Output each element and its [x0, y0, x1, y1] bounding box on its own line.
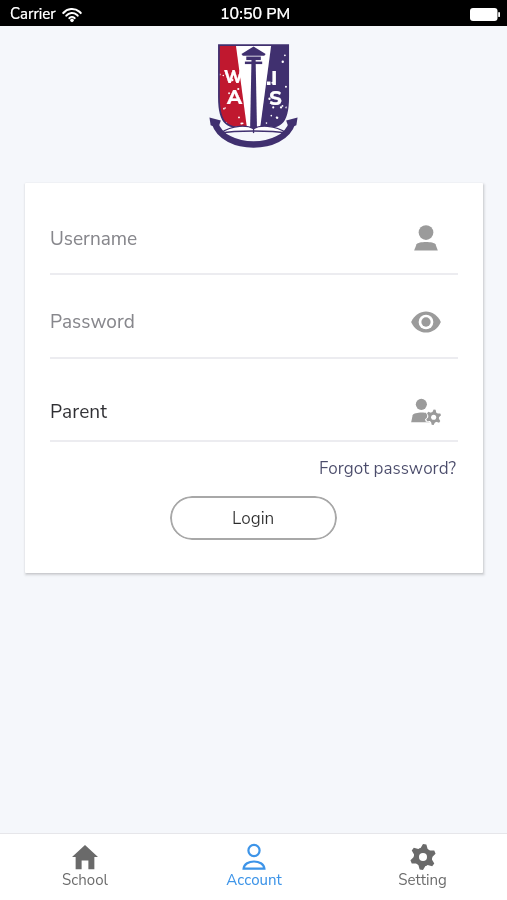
staticText: W.	[224, 66, 248, 89]
other: Select account type	[409, 395, 443, 429]
button[interactable]: Password	[50, 299, 458, 345]
staticText: Account	[226, 870, 282, 890]
staticText: 10:50 PM	[220, 3, 291, 25]
staticText: Parent	[50, 399, 107, 425]
button[interactable]: Login	[170, 496, 337, 540]
other: Username	[409, 222, 443, 256]
other: Show password	[409, 305, 443, 339]
staticText: School	[62, 870, 108, 890]
button[interactable]: Setting	[338, 834, 507, 900]
button[interactable]: Parent	[50, 389, 458, 435]
staticText: Login	[232, 507, 275, 530]
button[interactable]: Forgot password?	[256, 454, 457, 482]
button[interactable]: School	[0, 834, 169, 900]
staticText: Carrier	[10, 4, 56, 24]
staticText: A	[227, 84, 243, 111]
staticText: .I	[266, 65, 278, 92]
staticText: Username	[50, 226, 138, 252]
button[interactable]: Account	[169, 834, 338, 900]
staticText: Password	[50, 309, 135, 335]
button[interactable]: Username	[50, 216, 458, 262]
staticText: Setting	[398, 870, 447, 890]
staticText: S	[269, 85, 282, 112]
staticText: Forgot password?	[319, 457, 457, 480]
